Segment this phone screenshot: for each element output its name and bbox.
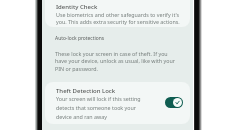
staticText: Auto-lock protections — [55, 35, 105, 42]
staticText: These lock your screen in case of theft.… — [55, 50, 176, 73]
button[interactable]: Theft Detection Lock — [45, 82, 190, 124]
button[interactable]: Theft Detection Lock, on — [165, 97, 183, 108]
staticText: Identity Check — [56, 3, 98, 11]
staticText: Use biometrics and other safeguards to v… — [56, 11, 183, 26]
staticText: Your screen will lock if this setting de… — [56, 95, 147, 120]
button[interactable]: Identity Check — [45, 0, 190, 27]
staticText: Theft Detection Lock — [56, 87, 116, 95]
